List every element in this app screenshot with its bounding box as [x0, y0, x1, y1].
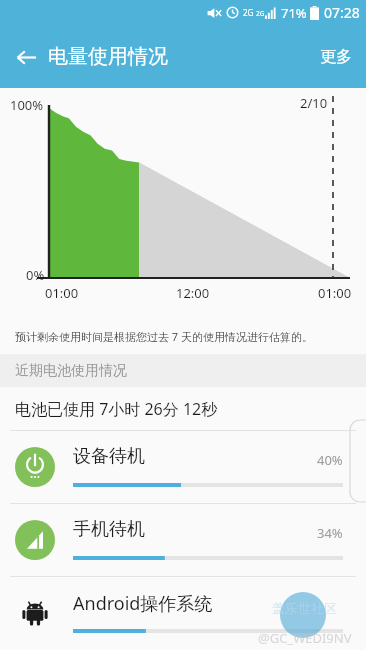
staticText: 01:00 [45, 284, 79, 302]
staticText: 盖乐世社区 [272, 600, 337, 616]
button[interactable]: 更多 [306, 39, 366, 75]
staticText: 更多 [320, 47, 352, 67]
staticText: 近期电池使用情况 [15, 362, 127, 380]
button[interactable]: 电池已使用 7小时 26分 12秒 [0, 387, 366, 430]
staticText: 0% [26, 266, 45, 284]
staticText: 手机待机 [73, 518, 145, 541]
staticText: 2G [243, 7, 254, 18]
staticText: 07:28 [324, 3, 360, 22]
button[interactable]: 设备待机 [0, 431, 366, 503]
staticText: 71% [281, 4, 307, 22]
staticText: Android操作系统 [73, 591, 213, 616]
button[interactable]: 手机待机 [0, 504, 366, 576]
staticText: 设备待机 [73, 445, 145, 468]
staticText: 01:00 [318, 284, 352, 302]
button[interactable]: Back [6, 37, 46, 77]
staticText: 电量使用情况 [48, 44, 168, 69]
staticText: 预计剩余使用时间是根据您过去 7 天的使用情况进行估算的。 [15, 329, 314, 344]
staticText: 100% [10, 96, 44, 114]
staticText: 电池已使用 7小时 26分 12秒 [15, 398, 218, 420]
staticText: 12:00 [176, 284, 210, 302]
staticText: 40% [317, 451, 343, 469]
button[interactable]: Android操作系统 [0, 577, 366, 649]
staticText: 34% [317, 524, 343, 542]
staticText: 2/10 [300, 94, 328, 112]
staticText: @GC_WEDI9NV [258, 629, 366, 647]
staticText: 2G [256, 9, 265, 18]
